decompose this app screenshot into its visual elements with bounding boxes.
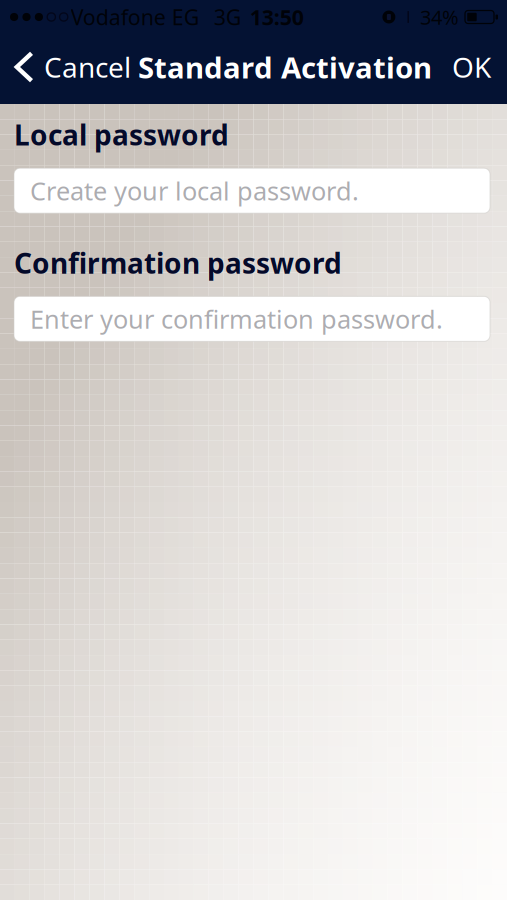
staticText: Confirmation password — [14, 244, 342, 281]
button[interactable]: Create your local password. — [14, 168, 490, 213]
staticText: Enter your confirmation password. — [30, 302, 443, 336]
staticText: Create your local password. — [30, 174, 359, 207]
button[interactable]: Cancel — [0, 38, 137, 96]
button[interactable]: OK — [434, 38, 507, 96]
staticText: 3G — [214, 3, 242, 31]
staticText: Vodafone EG — [71, 3, 200, 31]
staticText: 13:50 — [250, 3, 304, 31]
staticText: Standard Activation — [138, 47, 432, 86]
staticText: 34% — [420, 4, 459, 30]
button[interactable]: Enter your confirmation password. — [14, 296, 490, 341]
staticText: Cancel — [44, 48, 131, 86]
staticText: Local password — [14, 116, 229, 153]
staticText: OK — [452, 48, 491, 86]
